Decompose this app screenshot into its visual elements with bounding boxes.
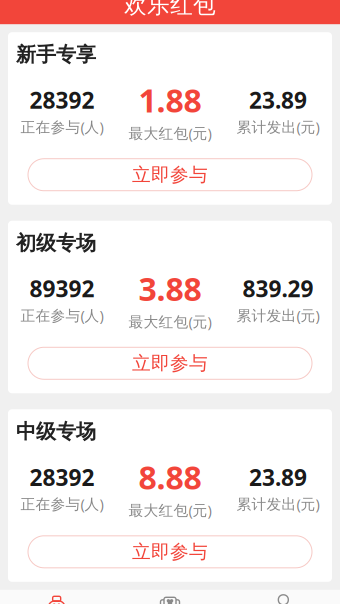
staticText: 初级专场 (16, 231, 96, 255)
staticText: 23.89 (249, 85, 307, 115)
staticText: 1.88 (138, 79, 201, 121)
staticText: 累计发出(元) (236, 494, 319, 514)
staticText: 8.88 (138, 456, 201, 498)
staticText: 正在参与(人) (20, 494, 103, 514)
button[interactable]: 我的 (227, 590, 340, 604)
staticText: 最大红包(元) (128, 500, 211, 520)
button[interactable]: 消息 (113, 590, 227, 604)
staticText: 28392 (29, 85, 94, 115)
staticText: 3.88 (138, 267, 201, 310)
staticText: 累计发出(元) (236, 306, 319, 325)
staticText: 新手专享 (16, 42, 96, 67)
staticText: 最大红包(元) (128, 312, 211, 331)
staticText: 23.89 (249, 462, 307, 492)
staticText: ¥ (53, 600, 60, 604)
staticText: 28392 (29, 462, 94, 492)
staticText: 正在参与(人) (20, 306, 103, 325)
staticText: 839.29 (242, 273, 313, 304)
button[interactable]: 立即参与 (28, 536, 312, 568)
staticText: 累计发出(元) (236, 117, 319, 137)
staticText: 欢乐红包 (124, 0, 216, 19)
staticText: 立即参与 (132, 352, 208, 375)
button[interactable]: 立即参与 (28, 159, 312, 191)
staticText: 立即参与 (132, 540, 208, 563)
staticText: 立即参与 (132, 163, 208, 186)
staticText: 正在参与(人) (20, 117, 103, 137)
staticText: 中级专场 (16, 419, 96, 444)
staticText: 89392 (29, 273, 94, 304)
button[interactable]: ¥ (0, 590, 113, 604)
staticText: 最大红包(元) (128, 123, 211, 143)
button[interactable]: 立即参与 (28, 347, 312, 379)
